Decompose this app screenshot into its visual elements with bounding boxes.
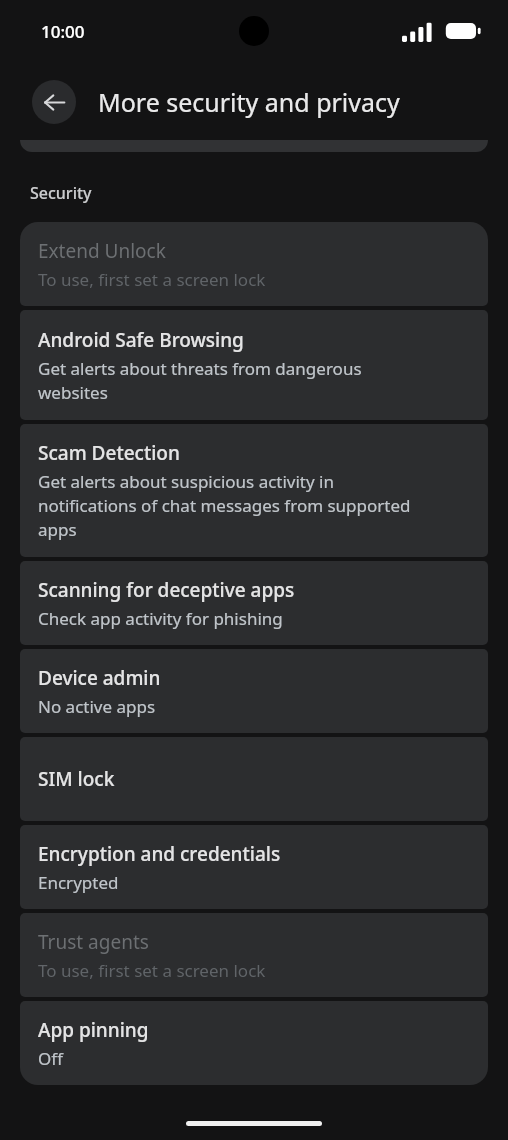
button[interactable]: App pinning [20, 1001, 488, 1085]
button[interactable]: Trust agents [20, 913, 488, 997]
staticText: Trust agents [38, 929, 149, 955]
button[interactable]: Device admin [20, 649, 488, 733]
button[interactable]: Scanning for deceptive apps [20, 561, 488, 645]
staticText: Extend Unlock [38, 238, 166, 264]
staticText: Get alerts about suspicious activity in … [38, 470, 411, 541]
staticText: Check app activity for phishing [38, 607, 283, 630]
staticText: SIM lock [38, 766, 115, 792]
button[interactable]: Back [32, 80, 76, 124]
button[interactable]: SIM lock [20, 737, 488, 821]
staticText: Scanning for deceptive apps [38, 577, 295, 603]
staticText: To use, first set a screen lock [38, 268, 266, 291]
staticText: App pinning [38, 1017, 149, 1043]
staticText: Encryption and credentials [38, 841, 281, 867]
staticText: 10:00 [41, 20, 85, 43]
staticText: More security and privacy [98, 85, 400, 119]
button[interactable]: Scam Detection [20, 424, 488, 557]
staticText: Encrypted [38, 871, 119, 894]
staticText: Off [38, 1047, 63, 1070]
staticText: To use, first set a screen lock [38, 959, 266, 982]
button[interactable]: Encryption and credentials [20, 825, 488, 909]
staticText: Get alerts about threats from dangerous … [38, 357, 362, 404]
staticText: No active apps [38, 695, 156, 718]
button[interactable]: Extend Unlock [20, 222, 488, 306]
staticText: Scam Detection [38, 440, 180, 466]
staticText: Security [30, 182, 92, 204]
staticText: Android Safe Browsing [38, 327, 244, 353]
staticText: Device admin [38, 665, 161, 691]
button[interactable]: Android Safe Browsing [20, 310, 488, 420]
